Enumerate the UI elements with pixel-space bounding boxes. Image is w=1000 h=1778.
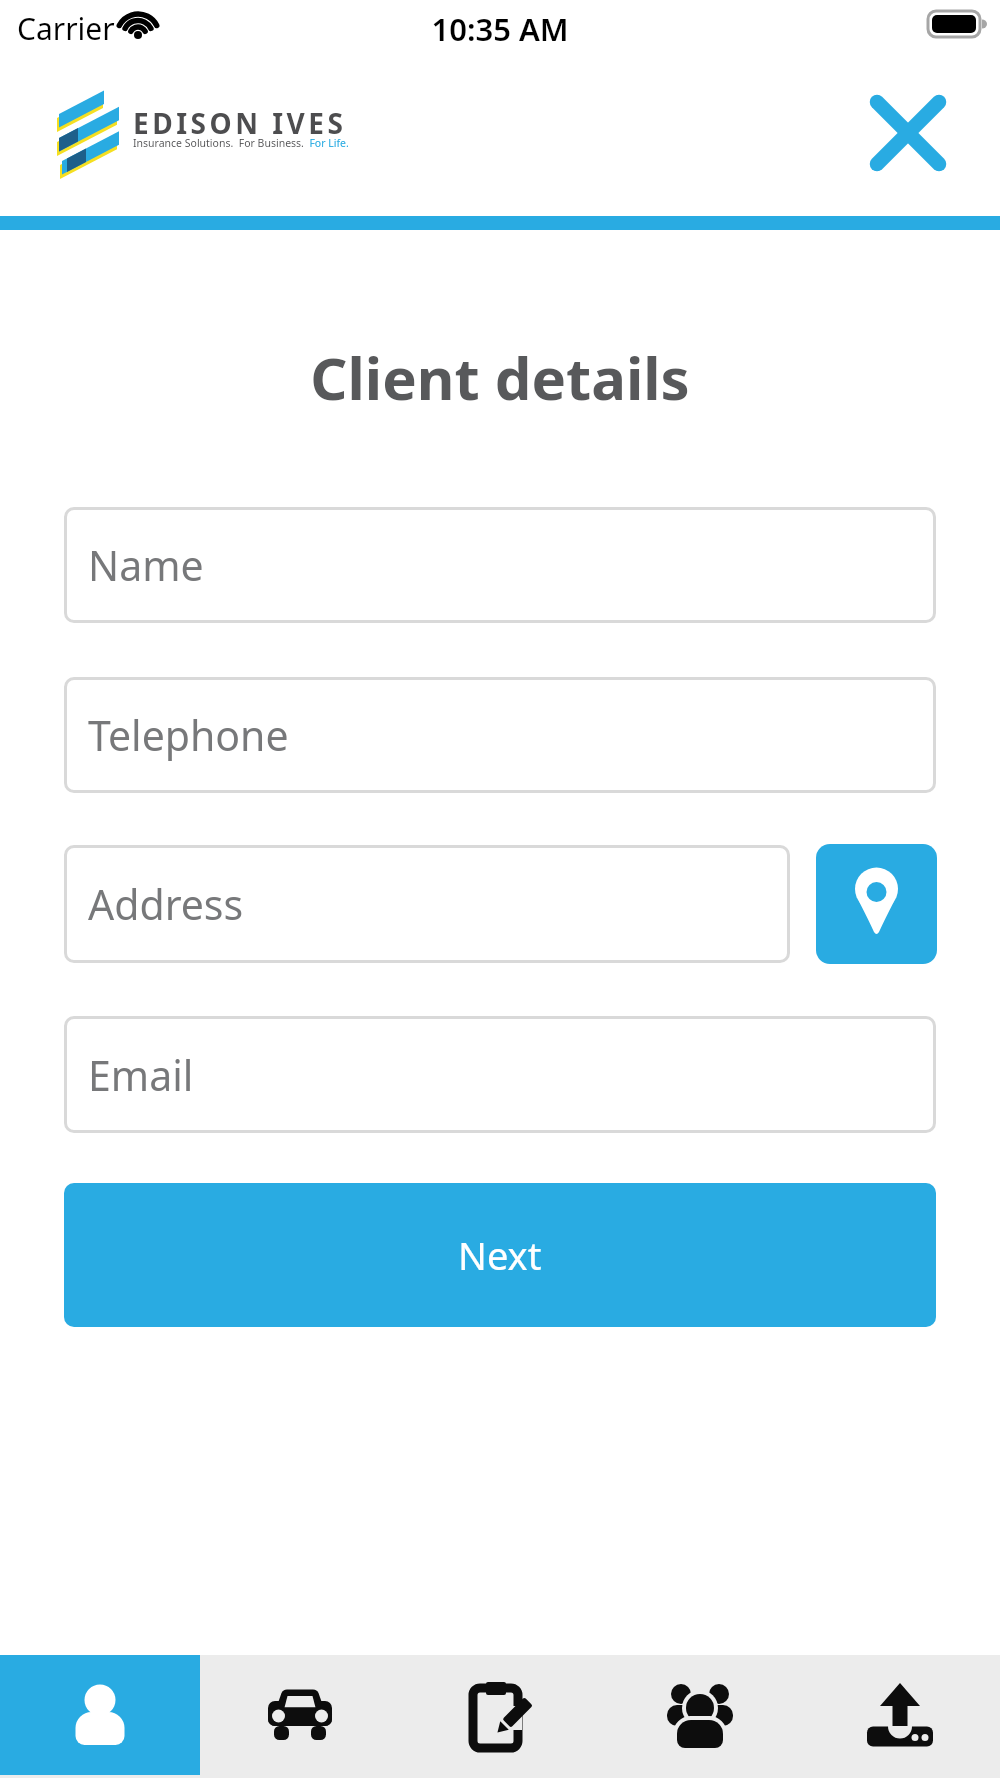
button[interactable]: Email xyxy=(64,1016,936,1133)
staticText: Next xyxy=(458,1229,542,1281)
button[interactable] xyxy=(0,1655,200,1775)
button[interactable]: Telephone xyxy=(64,677,936,793)
staticText: Insurance Solutions. For Business. For L… xyxy=(133,136,349,150)
button[interactable]: Address xyxy=(64,845,790,963)
staticText: Address xyxy=(88,876,244,932)
button[interactable] xyxy=(400,1655,600,1775)
staticText: Client details xyxy=(0,338,1000,417)
button[interactable] xyxy=(200,1655,400,1775)
button[interactable]: Next xyxy=(64,1183,936,1327)
staticText: 10:35 AM xyxy=(0,8,1000,50)
staticText: Name xyxy=(88,537,204,593)
staticText: Carrier xyxy=(17,8,115,49)
button[interactable] xyxy=(600,1655,800,1775)
button[interactable]: Name xyxy=(64,507,936,623)
staticText: Telephone xyxy=(88,707,289,763)
staticText: EDISON IVES xyxy=(133,104,347,142)
button[interactable] xyxy=(856,81,960,185)
button[interactable] xyxy=(816,844,937,964)
staticText: Email xyxy=(88,1047,194,1103)
button[interactable] xyxy=(800,1655,1000,1775)
